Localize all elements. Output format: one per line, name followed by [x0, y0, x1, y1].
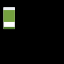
button[interactable]: Bottom navigation [3, 27, 15, 29]
button[interactable]: Top app bar [3, 7, 15, 10]
